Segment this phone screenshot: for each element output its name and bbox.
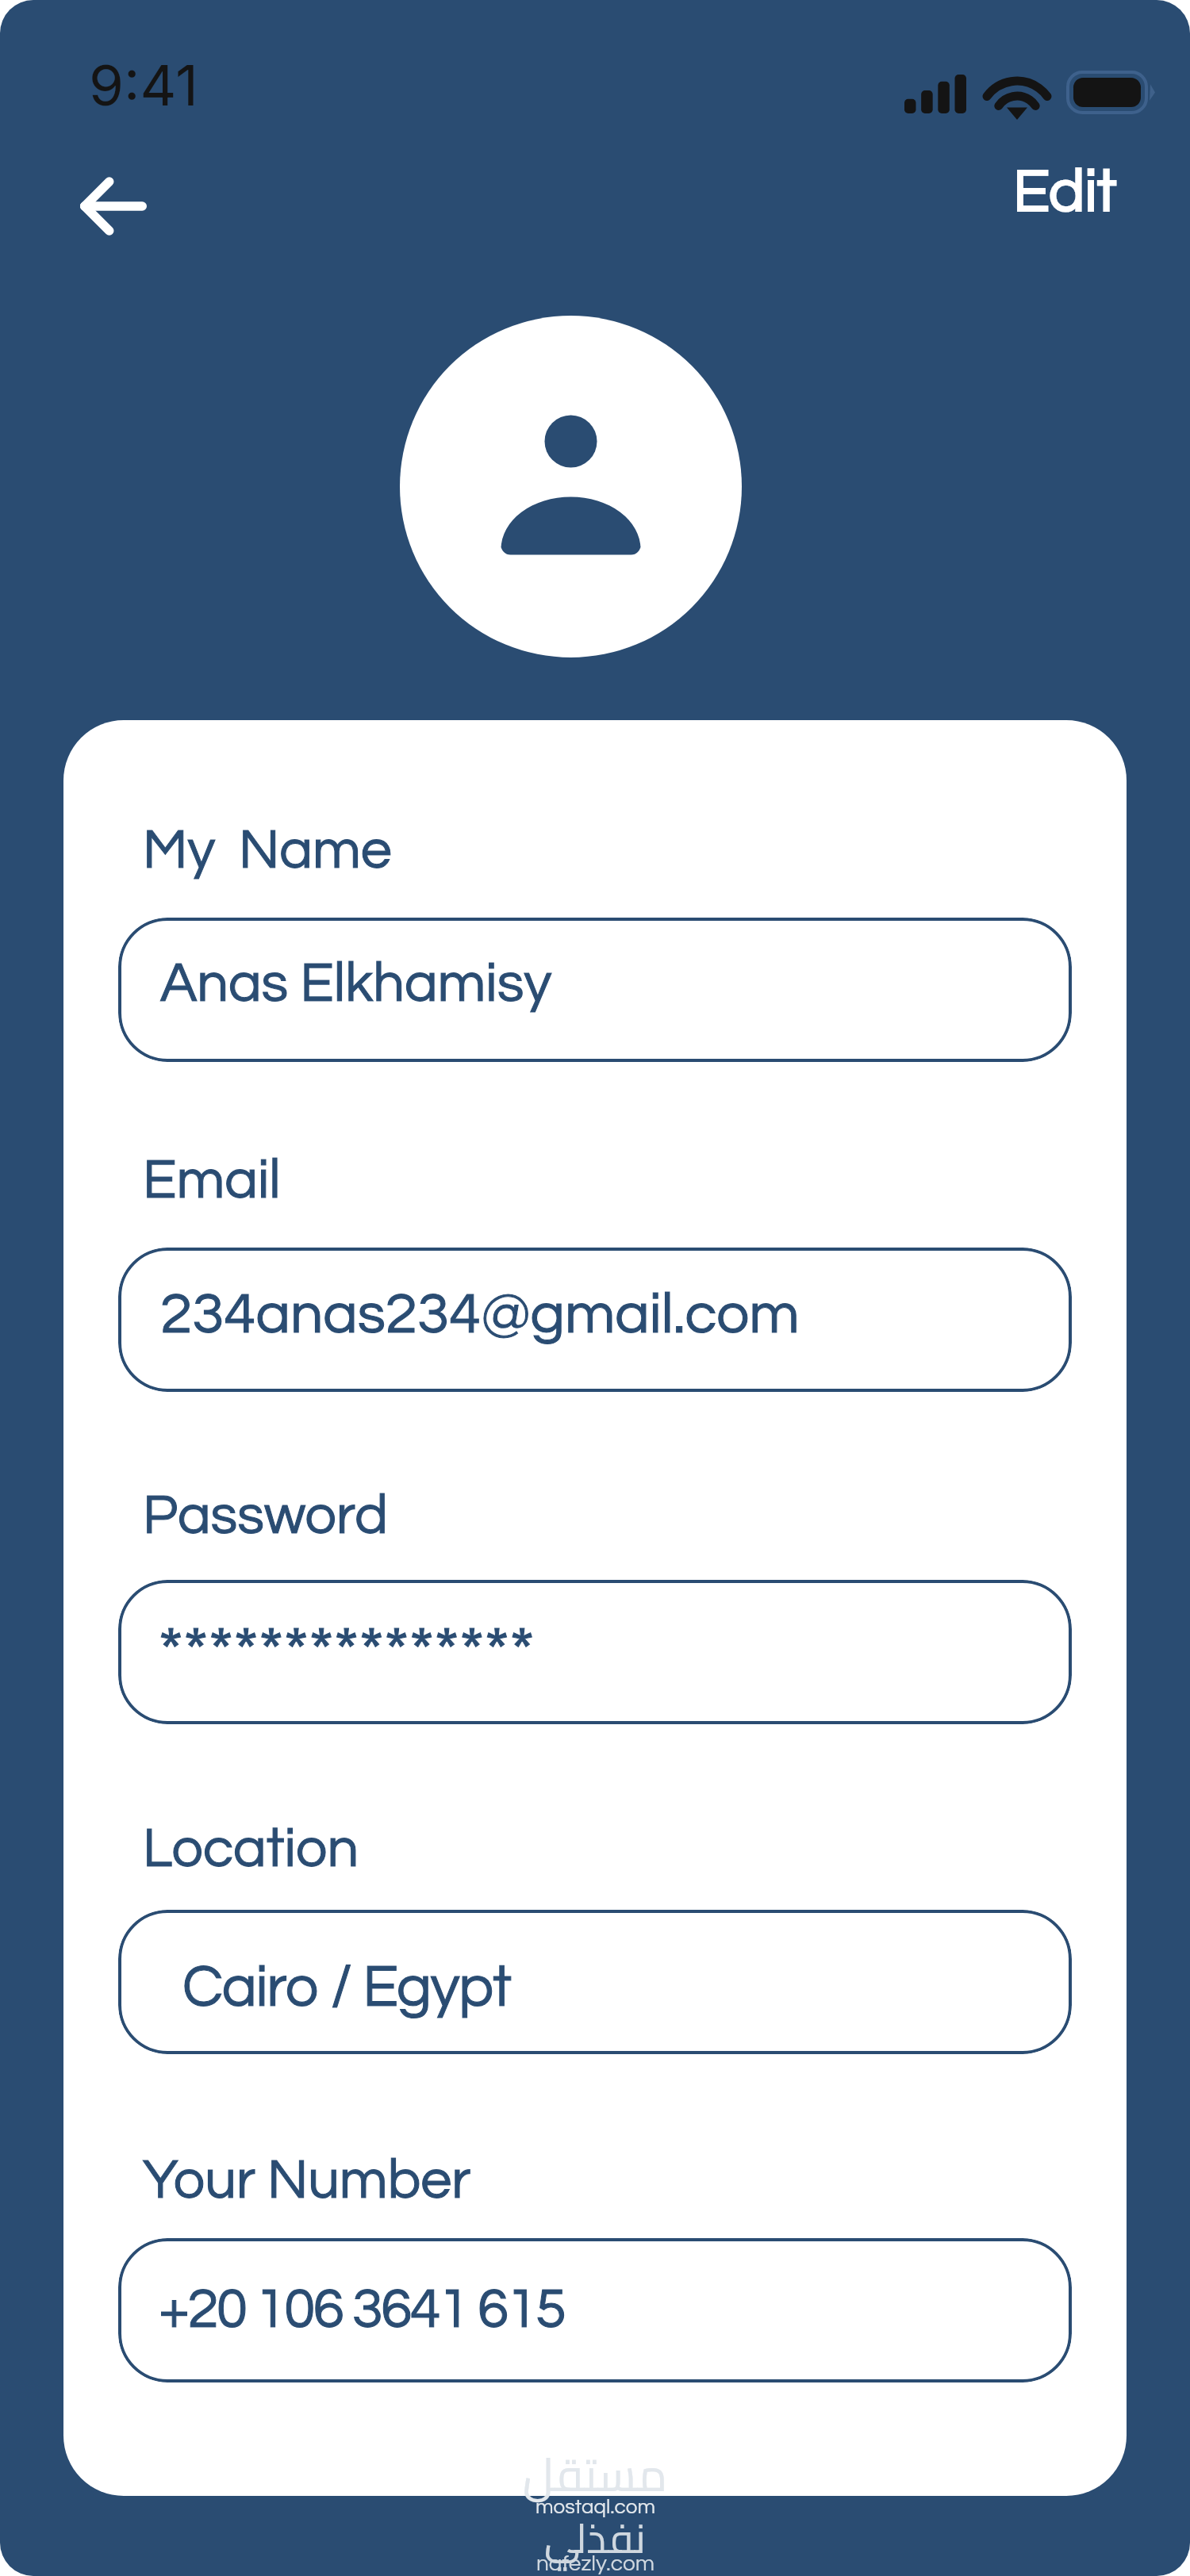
staticText: 234anas234@gmail.com [160, 1285, 800, 1344]
staticText: *************** [158, 1618, 535, 1690]
staticText: Cairo / Egypt [182, 1957, 511, 2018]
staticText: Edit [1013, 162, 1117, 224]
button[interactable]: Cairo / Egypt [118, 1910, 1072, 2054]
staticText: Cairo / Egypt [182, 1957, 511, 2018]
button[interactable]: Back [50, 143, 177, 270]
staticText: 234anas234@gmail.com [160, 1285, 800, 1344]
button[interactable]: *************** [118, 1580, 1072, 1724]
staticText: Password [143, 1488, 388, 1545]
button[interactable]: Profile photo [400, 316, 742, 657]
staticText: Anas Elkhamisy [160, 956, 552, 1013]
staticText: Location [143, 1821, 359, 1878]
staticText: Your Number [143, 2152, 471, 2210]
button[interactable]: Anas Elkhamisy [118, 918, 1072, 1062]
staticText: mostaql.com [535, 2497, 655, 2518]
button[interactable]: Edit [1013, 162, 1117, 224]
staticText: Location [143, 1821, 359, 1878]
staticText: Anas Elkhamisy [160, 956, 552, 1013]
staticText: nafezly.com [536, 2552, 654, 2575]
staticText: 9:41 [89, 51, 198, 119]
staticText: Password [143, 1488, 388, 1545]
staticText: نفذلي [544, 2499, 646, 2576]
staticText: Email [143, 1152, 281, 1209]
staticText: +20 106 3641 615 [159, 2281, 565, 2339]
staticText: *************** [158, 1618, 535, 1690]
button[interactable]: 234anas234@gmail.com [118, 1248, 1072, 1392]
staticText: Edit [1013, 162, 1117, 224]
button[interactable]: +20 106 3641 615 [118, 2238, 1072, 2382]
staticText: Email [143, 1152, 281, 1209]
staticText: مستقل [523, 2431, 667, 2517]
staticText: +20 106 3641 615 [159, 2281, 565, 2339]
staticText: Your Number [143, 2152, 471, 2210]
staticText: My Name [143, 822, 392, 880]
staticText: My Name [143, 822, 392, 880]
